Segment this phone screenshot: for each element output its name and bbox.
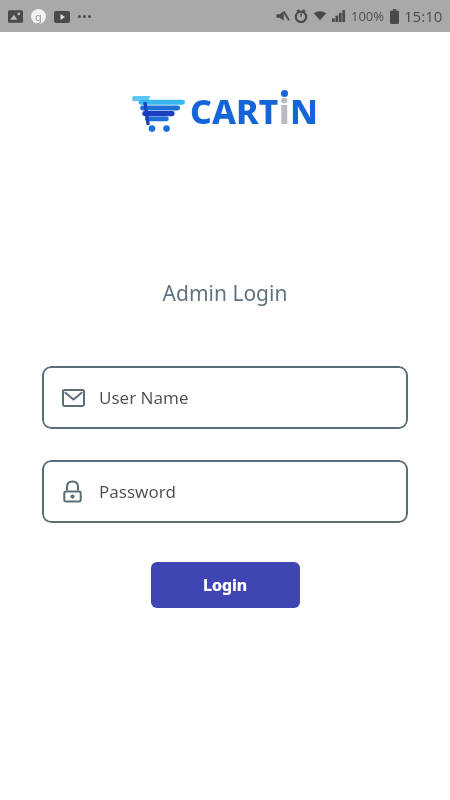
staticText: g <box>35 9 42 24</box>
staticText: Admin Login <box>0 279 450 308</box>
other: Password <box>62 480 83 504</box>
staticText: Login <box>203 574 248 596</box>
staticText: 100% <box>351 7 385 25</box>
staticText: Password <box>99 480 176 503</box>
button[interactable]: Email <box>42 366 408 429</box>
staticText: i <box>279 88 290 134</box>
button[interactable]: Login <box>151 562 300 608</box>
other: Email <box>62 389 85 407</box>
staticText: CART <box>190 88 279 134</box>
staticText: 15:10 <box>404 6 443 26</box>
staticText: N <box>290 88 318 134</box>
staticText: User Name <box>99 386 189 409</box>
button[interactable]: Password <box>42 460 408 523</box>
